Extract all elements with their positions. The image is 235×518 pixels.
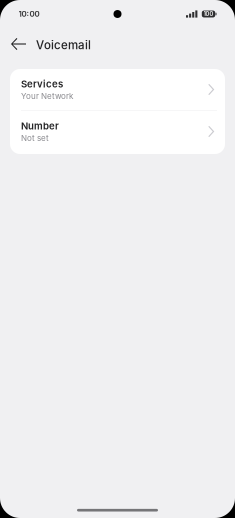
staticText: Number <box>21 120 59 132</box>
button[interactable]: Back <box>6 30 36 60</box>
staticText: Services <box>21 78 63 90</box>
staticText: Your Network <box>21 91 73 101</box>
button[interactable]: Services <box>10 69 225 110</box>
staticText: 10:00 <box>18 9 39 19</box>
staticText: Not set <box>21 133 49 143</box>
staticText: Voicemail <box>36 38 91 52</box>
staticText: 100 <box>203 10 213 17</box>
button[interactable]: Number <box>10 111 225 154</box>
